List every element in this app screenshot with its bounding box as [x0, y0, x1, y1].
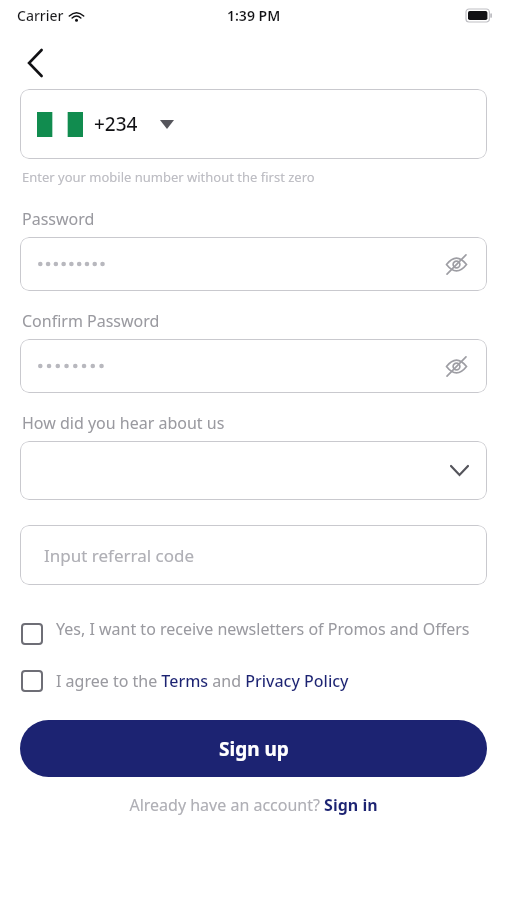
- button[interactable]: Show password: [20, 237, 487, 291]
- other: Select country: [160, 120, 174, 129]
- button[interactable]: Show password: [20, 339, 487, 393]
- staticText: Input referral code: [44, 544, 195, 567]
- button[interactable]: +234: [20, 89, 487, 159]
- staticText: Carrier: [17, 6, 64, 25]
- staticText: Confirm Password: [22, 310, 160, 332]
- staticText: Sign up: [219, 736, 289, 762]
- staticText: I agree to the Terms and Privacy Policy: [56, 670, 349, 692]
- staticText: Password: [22, 208, 95, 230]
- button[interactable]: Back: [12, 40, 58, 86]
- other: Show password: [444, 252, 469, 277]
- button[interactable]: Yes, I want to receive newsletters of Pr…: [20, 618, 487, 645]
- other: Show password: [444, 354, 469, 379]
- staticText: Enter your mobile number without the fir…: [22, 168, 315, 186]
- button[interactable]: Already have an account? Sign in: [0, 794, 507, 816]
- button[interactable]: Input referral code: [20, 525, 487, 585]
- staticText: Already have an account? Sign in: [129, 794, 378, 816]
- button[interactable]: How did you hear about us dropdown: [20, 441, 487, 500]
- staticText: +234: [94, 111, 138, 137]
- button[interactable]: I agree to the Terms and Privacy Policy: [20, 670, 487, 692]
- staticText: Yes, I want to receive newsletters of Pr…: [56, 618, 470, 640]
- staticText: 1:39 PM: [227, 6, 281, 25]
- staticText: How did you hear about us: [22, 412, 225, 434]
- button[interactable]: Sign up: [20, 720, 487, 777]
